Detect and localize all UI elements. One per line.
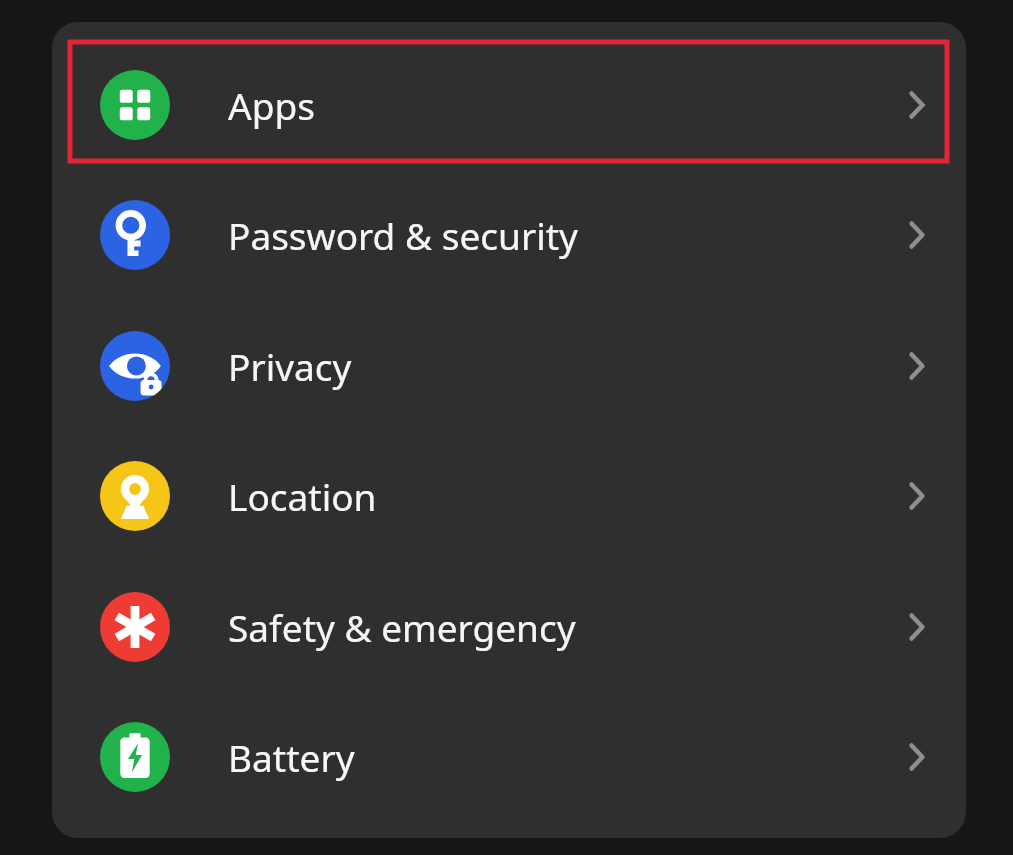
staticText: Password & security: [228, 210, 578, 260]
button[interactable]: Battery: [52, 692, 966, 822]
staticText: Location: [228, 471, 377, 521]
staticText: Apps: [228, 80, 315, 130]
staticText: Privacy: [228, 341, 352, 391]
button[interactable]: Safety & emergency: [52, 562, 966, 692]
staticText: Battery: [228, 732, 355, 782]
staticText: Safety & emergency: [228, 602, 576, 652]
button[interactable]: Privacy: [52, 301, 966, 431]
button[interactable]: Location: [52, 431, 966, 561]
button[interactable]: Password & security: [52, 170, 966, 300]
button[interactable]: Apps: [52, 40, 966, 170]
